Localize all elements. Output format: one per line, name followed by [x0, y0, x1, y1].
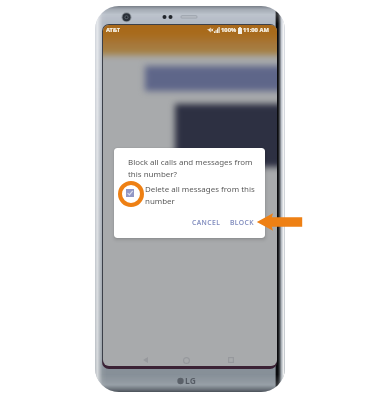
button[interactable]: CANCEL — [190, 216, 223, 229]
staticText: 100% — [221, 26, 237, 34]
staticText: Block all calls and messages from this n… — [128, 157, 253, 179]
staticText: LG — [185, 375, 197, 387]
staticText: Delete all messages from this number — [145, 184, 255, 206]
button[interactable]: Back — [137, 352, 153, 366]
staticText: 11:00 AM — [243, 26, 269, 34]
button[interactable]: Recent apps — [223, 352, 239, 366]
button[interactable]: Home — [178, 352, 194, 366]
button[interactable]: Delete all messages from this number — [120, 183, 140, 203]
button[interactable]: BLOCK — [228, 216, 256, 229]
staticText: BLOCK — [230, 218, 254, 227]
staticText: CANCEL — [192, 218, 221, 227]
staticText: AT&T — [106, 26, 121, 34]
